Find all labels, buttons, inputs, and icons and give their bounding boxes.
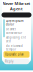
staticText: sit amet consectetur [6, 27, 22, 35]
button[interactable]: Upgrade plan [3, 51, 29, 58]
staticText: do eiusmod tempor [6, 44, 23, 51]
staticText: Reply [5, 60, 13, 63]
staticText: Lorem ipsum dolor [6, 19, 23, 26]
staticText: Upgrade plan [5, 53, 24, 56]
staticText: Agent [10, 6, 23, 11]
button[interactable]: Reply [3, 59, 29, 64]
button[interactable] [1, 12, 31, 17]
staticText: Never Mike set [2, 1, 30, 6]
staticText: adipiscing elit sed [6, 36, 26, 43]
